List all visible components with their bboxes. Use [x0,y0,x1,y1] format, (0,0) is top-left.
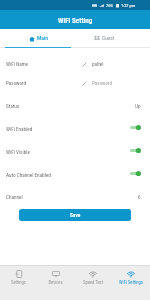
button[interactable]: Password [0,72,150,93]
staticText: WiFi Settings [119,280,143,285]
button[interactable]: Channel [0,186,150,207]
staticText: 1:27 pm [121,3,136,8]
button[interactable]: WiFi Settings [112,266,150,300]
button[interactable]: Status [0,95,150,116]
staticText: Status [6,103,20,109]
staticText: Guest [102,35,115,41]
button[interactable]: Devices [37,266,74,300]
staticText: Save [70,212,81,218]
button[interactable]: Main [5,29,71,47]
staticText: WiFi Setting [58,16,93,24]
button[interactable]: Guest [71,29,137,47]
staticText: Settings [11,280,26,285]
staticText: Up [135,103,141,109]
button[interactable]: Save [19,209,131,221]
staticText: Devices [48,280,63,285]
staticText: Auto Channel Enabled [6,172,51,178]
button[interactable]: Speed Test [74,266,112,300]
staticText: Password [92,80,113,86]
button[interactable]: Auto Channel Enabled [0,164,150,185]
button[interactable]: WiFi Name [0,53,150,74]
staticText: paltel [92,61,104,67]
staticText: WiFi Enabled [6,126,33,132]
staticText: 76% [106,3,114,8]
staticText: WiFi Name [6,61,29,67]
button[interactable]: Settings [0,266,37,300]
staticText: Channel [6,194,23,200]
staticText: Main [37,35,48,42]
button[interactable]: WiFi Enabled [0,118,150,139]
button[interactable]: WiFi Visible [0,141,150,162]
staticText: 6 [138,194,141,200]
staticText: Password [6,80,27,86]
staticText: WiFi Visible [6,149,30,155]
staticText: Speed Test [83,280,103,285]
